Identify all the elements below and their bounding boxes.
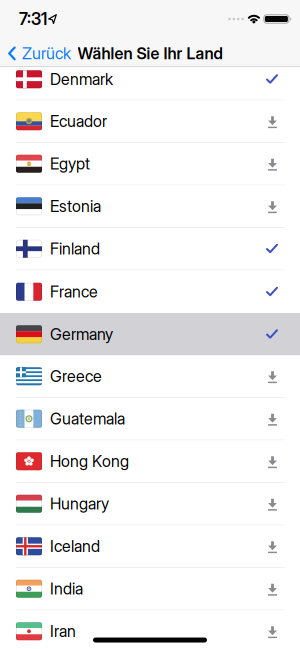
staticText: Denmark <box>50 70 113 89</box>
staticText: Germany <box>50 325 113 344</box>
button[interactable]: Greece <box>0 355 300 397</box>
button[interactable]: Estonia <box>0 185 300 227</box>
staticText: India <box>50 579 83 598</box>
staticText: Zurück <box>22 44 71 63</box>
staticText: 7:31 <box>19 9 47 29</box>
staticText: Finland <box>50 239 100 258</box>
button[interactable]: Germany <box>0 313 300 355</box>
staticText: Iran <box>50 622 76 641</box>
button[interactable]: Guatemala <box>0 398 300 439</box>
button[interactable]: Egypt <box>0 143 300 184</box>
button[interactable]: Hungary <box>0 483 300 524</box>
button[interactable]: Ecuador <box>0 100 300 142</box>
staticText: Iceland <box>50 537 100 556</box>
staticText: Ecuador <box>50 112 107 131</box>
staticText: Hong Kong <box>50 452 129 471</box>
button[interactable]: France <box>0 270 300 313</box>
staticText: Hungary <box>50 494 109 513</box>
staticText: Greece <box>50 367 102 386</box>
button[interactable]: Finland <box>0 228 300 269</box>
button[interactable]: Iran <box>0 610 300 649</box>
button[interactable]: India <box>0 568 300 609</box>
button[interactable]: Zurück <box>0 44 71 63</box>
staticText: France <box>50 282 98 301</box>
staticText: Guatemala <box>50 409 125 428</box>
button[interactable]: Hong Kong <box>0 440 300 482</box>
staticText: Estonia <box>50 197 101 216</box>
button[interactable]: Iceland <box>0 525 300 567</box>
button[interactable]: Denmark <box>0 67 300 99</box>
staticText: Wählen Sie Ihr Land <box>77 44 222 63</box>
staticText: Egypt <box>50 154 90 173</box>
